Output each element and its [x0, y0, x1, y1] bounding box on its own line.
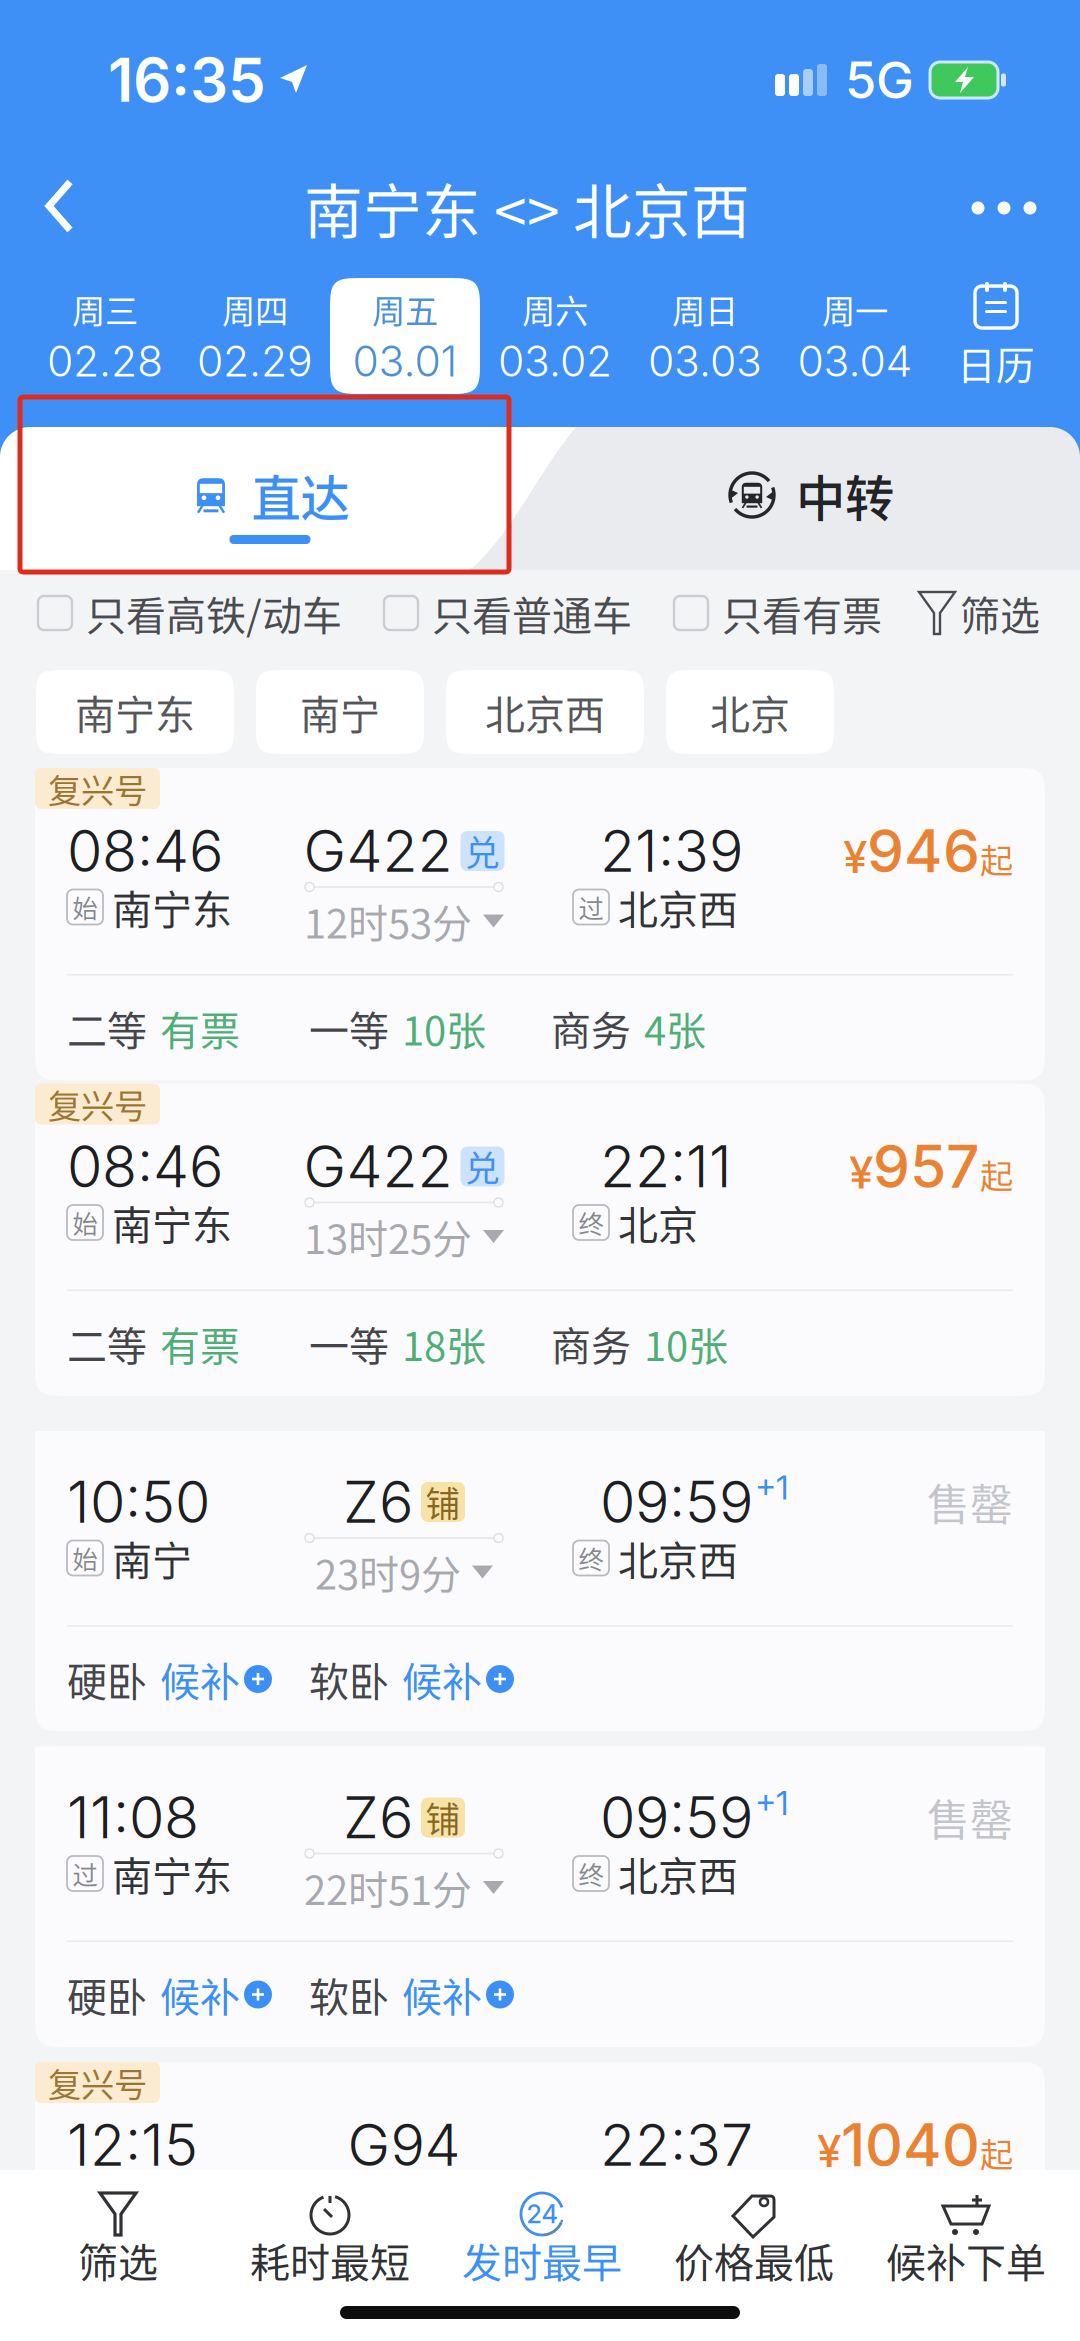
button[interactable]: 复兴号 — [35, 2062, 1045, 2341]
staticText: 起 — [980, 1150, 1013, 1198]
button[interactable]: 耗时最短 — [224, 2170, 436, 2305]
staticText: 候补 — [160, 1965, 240, 2023]
staticText: 周一 — [822, 285, 888, 333]
button[interactable]: 候补下单 — [860, 2170, 1072, 2305]
staticText: 筛选 — [960, 584, 1040, 642]
staticText: 12:15 — [67, 2110, 198, 2180]
staticText: 24 — [526, 2199, 557, 2229]
staticText: 复兴号 — [48, 764, 147, 813]
staticText: 日历 — [957, 335, 1035, 391]
staticText: 铺 — [425, 1792, 460, 1843]
staticText: 南宁东 — [112, 2172, 232, 2230]
staticText: 11:08 — [67, 1783, 199, 1852]
staticText: 北京西 — [618, 2172, 738, 2230]
staticText: 周四 — [222, 285, 288, 333]
staticText: 一等 — [309, 2293, 389, 2341]
button[interactable]: 周日 — [630, 278, 780, 394]
button[interactable]: 北京西 — [446, 670, 644, 754]
staticText: 周三 — [72, 285, 138, 333]
staticText: 北京西 — [485, 683, 605, 741]
staticText: 23时9分 — [315, 1543, 461, 1601]
staticText: ¥ — [817, 2124, 841, 2177]
button[interactable]: 11:08 — [35, 1746, 1045, 2047]
button[interactable]: 周五 — [330, 278, 480, 394]
staticText: 18张 — [402, 1314, 486, 1372]
button[interactable]: 周六 — [480, 278, 630, 394]
staticText: 北京西 — [618, 878, 738, 936]
button[interactable]: 只看有票 — [674, 584, 882, 642]
staticText: 有票 — [160, 1314, 240, 1372]
staticText: 周五 — [372, 285, 438, 333]
button[interactable]: Back — [8, 160, 112, 256]
button[interactable]: 10:50 — [35, 1431, 1045, 1731]
staticText: 只看普通车 — [432, 584, 632, 642]
staticText: 5张 — [402, 2293, 464, 2341]
staticText: 候补 — [160, 1650, 240, 1708]
button[interactable]: 复兴号 — [35, 1083, 1045, 1396]
staticText: 过 — [578, 889, 603, 925]
staticText: 始 — [72, 1204, 97, 1241]
staticText: 直达 — [251, 459, 349, 531]
staticText: 售罄 — [927, 1471, 1013, 1533]
staticText: 南宁东 — [112, 1844, 232, 1902]
button[interactable]: 24 — [436, 2170, 648, 2305]
staticText: 商务 — [551, 999, 631, 1057]
button[interactable]: 周三 — [30, 278, 180, 394]
staticText: 始 — [72, 2183, 97, 2219]
button[interactable]: 直达 — [0, 427, 540, 570]
button[interactable]: 南宁 — [256, 670, 424, 754]
button[interactable]: 周四 — [180, 278, 330, 394]
staticText: 铺 — [425, 1477, 460, 1527]
staticText: 09:59 — [600, 1467, 753, 1537]
staticText: 16:35 — [108, 44, 266, 116]
staticText: 北京西 — [618, 1844, 738, 1902]
staticText: 终 — [578, 1540, 603, 1576]
staticText: 起 — [980, 834, 1013, 882]
staticText: G422 — [303, 816, 452, 886]
staticText: Z6 — [343, 1783, 413, 1852]
staticText: 复兴号 — [48, 1080, 147, 1128]
staticText: 10:50 — [67, 1467, 210, 1537]
staticText: 北京 — [710, 683, 790, 741]
button[interactable]: 复兴号 — [35, 768, 1045, 1080]
staticText: 南宁东 <> 北京西 — [304, 165, 750, 250]
staticText: 10张 — [402, 999, 486, 1057]
staticText: 5G — [845, 49, 914, 111]
staticText: 硬卧 — [67, 1965, 147, 2023]
staticText: 二等 — [67, 999, 147, 1057]
staticText: 22:37 — [600, 2110, 753, 2180]
button[interactable]: 日历 — [930, 277, 1062, 395]
staticText: 耗时最短 — [250, 2231, 410, 2289]
staticText: 发时最早 — [462, 2231, 622, 2289]
staticText: 兑 — [465, 826, 500, 876]
staticText: 软卧 — [309, 1965, 389, 2023]
button[interactable]: 周一 — [780, 278, 930, 394]
staticText: 候补 — [402, 1965, 482, 2023]
button[interactable]: 只看高铁/动车 — [38, 584, 342, 642]
staticText: 21:39 — [600, 816, 743, 886]
staticText: 周日 — [672, 285, 738, 333]
staticText: 候补 — [402, 1650, 482, 1708]
button[interactable]: 筛选 — [12, 2170, 224, 2305]
button[interactable]: 价格最低 — [648, 2170, 860, 2305]
staticText: 03.04 — [797, 335, 912, 387]
button[interactable]: More — [942, 160, 1066, 256]
staticText: 03.03 — [648, 335, 762, 387]
staticText: 946 — [867, 815, 980, 886]
staticText: 一等 — [309, 999, 389, 1057]
button[interactable]: 筛选 — [924, 584, 1040, 642]
staticText: 只看有票 — [722, 584, 882, 642]
staticText: 过 — [72, 1855, 97, 1892]
button[interactable]: 中转 — [540, 427, 1080, 570]
staticText: 软卧 — [309, 1650, 389, 1708]
button[interactable]: 北京 — [666, 670, 834, 754]
staticText: 南宁东 — [112, 878, 232, 936]
staticText: 中转 — [796, 459, 894, 531]
staticText: 957 — [873, 1131, 980, 1202]
staticText: 02.28 — [47, 335, 163, 387]
staticText: 南宁东 — [75, 683, 195, 741]
button[interactable]: 南宁东 — [36, 670, 234, 754]
button[interactable]: 只看普通车 — [384, 584, 632, 642]
staticText: 终 — [578, 1855, 603, 1892]
staticText: 复兴号 — [48, 2058, 147, 2107]
